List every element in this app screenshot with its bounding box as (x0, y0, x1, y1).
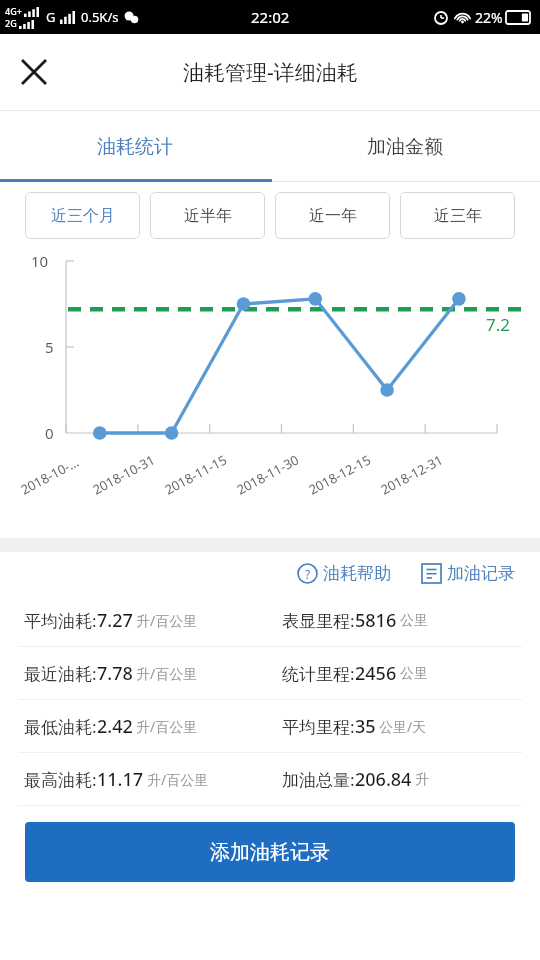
staticText: 升/百公里 (136, 664, 198, 683)
staticText: 加油金额 (367, 135, 443, 159)
staticText: 7.78 (97, 661, 133, 686)
button[interactable]: 近三年 (400, 192, 515, 239)
staticText: 5816 (355, 608, 397, 633)
staticText: 添加油耗记录 (210, 840, 330, 865)
button[interactable]: 油耗统计 (0, 111, 270, 182)
staticText: 公里 (400, 665, 428, 683)
staticText: 2018-12-31 (377, 451, 446, 498)
staticText: 近三个月 (51, 206, 115, 226)
staticText: 10 (31, 251, 49, 271)
staticText: 2018-11-30 (233, 451, 302, 498)
staticText: 平均里程: (282, 715, 355, 738)
staticText: 2456 (355, 661, 397, 686)
button[interactable]: 最近油耗: (0, 647, 540, 700)
staticText: 加油记录 (447, 563, 515, 584)
staticText: 统计里程: (282, 662, 355, 685)
staticText: 5 (45, 337, 54, 357)
button[interactable]: 加油金额 (270, 111, 540, 182)
staticText: 近三年 (434, 206, 482, 226)
staticText: 2018-10-… (17, 452, 82, 498)
staticText: 最近油耗: (24, 662, 97, 685)
staticText: 升/百公里 (136, 717, 198, 736)
staticText: 2018-12-15 (305, 451, 374, 498)
button[interactable]: 近三个月 (25, 192, 140, 239)
button[interactable]: 近半年 (150, 192, 265, 239)
button[interactable]: 最高油耗: (0, 753, 540, 806)
button[interactable]: Close (8, 46, 60, 98)
staticText: 2G (5, 17, 17, 29)
staticText: 平均油耗: (24, 609, 97, 632)
button[interactable]: 最低油耗: (0, 700, 540, 753)
staticText: 油耗帮助 (323, 563, 391, 584)
staticText: 油耗统计 (97, 135, 173, 159)
staticText: 206.84 (355, 767, 412, 792)
staticText: 近一年 (309, 206, 357, 226)
staticText: 7.2 (486, 313, 511, 336)
staticText: 0.5K/s (81, 8, 119, 26)
staticText: 公里 (400, 612, 428, 630)
staticText: 表显里程: (282, 609, 355, 632)
button[interactable]: 加油记录 (418, 563, 518, 584)
staticText: 4G+ (5, 5, 22, 17)
staticText: 公里/天 (379, 717, 427, 736)
staticText: 2018-11-15 (161, 451, 230, 498)
staticText: 11.17 (97, 767, 144, 792)
button[interactable]: 平均油耗: (0, 594, 540, 647)
staticText: 近半年 (184, 206, 232, 226)
button[interactable]: 近一年 (275, 192, 390, 239)
staticText: 7.27 (97, 608, 133, 633)
staticText: 最高油耗: (24, 768, 97, 791)
staticText: 2018-10-31 (89, 451, 158, 498)
staticText: 22% (475, 8, 503, 27)
staticText: 油耗管理-详细油耗 (183, 58, 358, 87)
staticText: 升 (415, 771, 429, 789)
staticText: ? (305, 566, 311, 582)
staticText: 35 (355, 714, 376, 739)
button[interactable]: ? (294, 563, 394, 584)
staticText: 最低油耗: (24, 715, 97, 738)
staticText: 升/百公里 (147, 770, 209, 789)
staticText: 升/百公里 (136, 611, 198, 630)
button[interactable]: 添加油耗记录 (25, 822, 515, 882)
staticText: 2.42 (97, 714, 133, 739)
staticText: G (46, 8, 56, 26)
staticText: 22:02 (251, 7, 290, 27)
staticText: 加油总量: (282, 768, 355, 791)
staticText: 0 (45, 423, 54, 443)
